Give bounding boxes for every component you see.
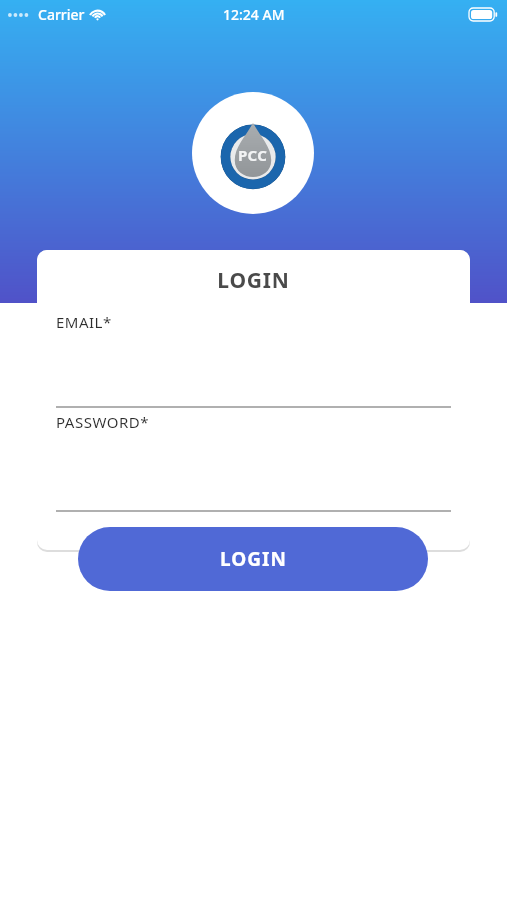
staticText: LOGIN: [37, 266, 470, 295]
staticText: PCC: [238, 145, 268, 165]
button[interactable]: LOGIN: [78, 527, 428, 591]
staticText: LOGIN: [220, 546, 287, 572]
button[interactable]: [56, 368, 451, 408]
staticText: Carrier: [38, 5, 85, 24]
button[interactable]: [56, 472, 451, 512]
staticText: PASSWORD*: [56, 412, 149, 432]
staticText: EMAIL*: [56, 312, 112, 332]
staticText: 12:24 AM: [223, 5, 285, 24]
